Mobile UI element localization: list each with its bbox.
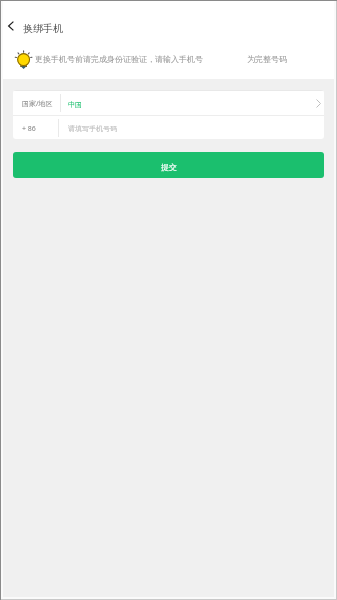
button[interactable]: Back	[0, 14, 23, 38]
staticText: 国家/地区	[22, 99, 53, 109]
staticText: 换绑手机	[23, 22, 63, 35]
staticText: 更换手机号前请完成身份证验证，请输入手机号	[35, 54, 203, 64]
staticText: 请填写手机号码	[68, 124, 117, 133]
button[interactable]: 提交	[13, 152, 324, 178]
staticText: 提交	[161, 162, 177, 172]
staticText: + 86	[22, 124, 36, 134]
staticText: 为完整号码	[247, 54, 287, 64]
button[interactable]: 国家/地区	[13, 91, 324, 115]
staticText: 中国	[68, 100, 82, 109]
button[interactable]: + 86	[13, 116, 324, 139]
